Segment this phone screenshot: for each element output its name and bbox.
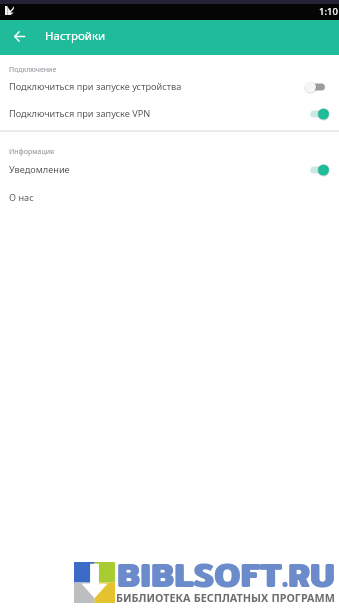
- button[interactable]: Подключиться при запуске VPN: [0, 100, 339, 127]
- button[interactable]: Уведомление: [0, 156, 339, 183]
- button[interactable]: О нас: [0, 184, 339, 211]
- button[interactable]: Подключиться при запуске устройства: [0, 73, 339, 100]
- staticText: 1:10: [319, 5, 338, 18]
- staticText: Уведомление: [9, 163, 304, 176]
- staticText: Подключиться при запуске VPN: [9, 107, 304, 120]
- staticText: О нас: [9, 191, 34, 204]
- staticText: БИБЛИОТЕКА БЕСПЛАТНЫХ ПРОГРАММ: [116, 590, 335, 607]
- button[interactable]: Back: [4, 21, 34, 51]
- staticText: Настройки: [45, 28, 106, 44]
- staticText: Подключиться при запуске устройства: [9, 80, 304, 93]
- staticText: Информация: [9, 147, 55, 157]
- staticText: BIBLSOFT.RU: [117, 547, 336, 602]
- staticText: Подключение: [9, 65, 57, 75]
